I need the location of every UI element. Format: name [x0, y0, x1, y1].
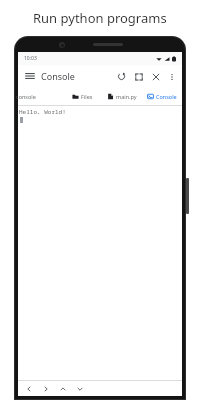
button[interactable]: Previous [20, 381, 37, 396]
button[interactable]: Refresh [113, 68, 130, 85]
button[interactable]: Fullscreen [130, 68, 147, 85]
staticText: Console [156, 93, 177, 100]
staticText: Files [81, 93, 93, 100]
button[interactable]: More options [164, 69, 179, 84]
button[interactable]: Close [147, 68, 164, 85]
button[interactable]: Up [54, 381, 71, 396]
button[interactable]: Menu [21, 67, 39, 85]
staticText: Run python programs [33, 9, 167, 27]
button[interactable]: main.py [102, 87, 142, 106]
button[interactable]: Next [37, 381, 54, 396]
button[interactable]: console [18, 87, 62, 106]
staticText: console [16, 93, 36, 100]
staticText: 10:03 [24, 55, 37, 62]
staticText: main.py [116, 93, 137, 100]
staticText: Console [41, 70, 75, 82]
staticText: Hello, World! [19, 108, 66, 116]
button[interactable]: Files [62, 87, 102, 106]
button[interactable]: Console [142, 87, 182, 106]
button[interactable]: Down [71, 381, 88, 396]
button[interactable]: Hello, World! [18, 106, 182, 380]
